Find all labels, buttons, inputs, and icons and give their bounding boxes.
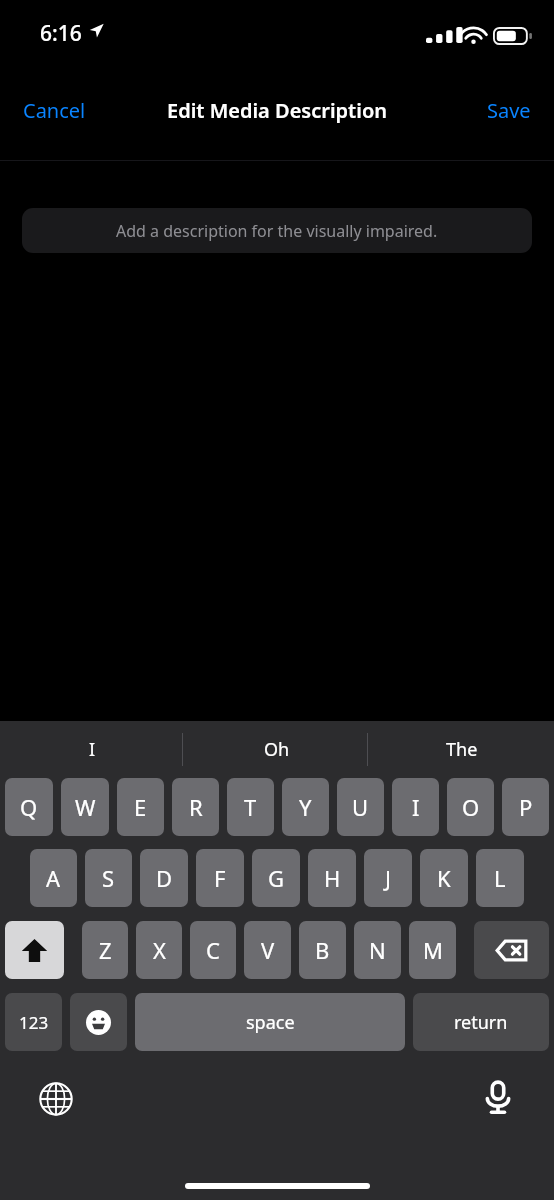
staticText: Oh bbox=[264, 737, 290, 762]
staticText: B bbox=[315, 935, 330, 965]
staticText: M bbox=[423, 935, 443, 965]
staticText: I bbox=[89, 737, 96, 762]
staticText: return bbox=[454, 1010, 508, 1035]
button[interactable]: H bbox=[308, 849, 356, 907]
button[interactable]: Switch keyboard bbox=[33, 1076, 79, 1122]
button[interactable]: A bbox=[30, 849, 77, 907]
staticText: R bbox=[189, 792, 203, 822]
staticText: Z bbox=[99, 935, 112, 965]
staticText: O bbox=[462, 792, 480, 822]
staticText: Edit Media Description bbox=[167, 97, 387, 124]
button[interactable]: I bbox=[392, 778, 439, 836]
staticText: H bbox=[324, 863, 341, 893]
staticText: 123 bbox=[19, 1011, 49, 1034]
button[interactable]: F bbox=[196, 849, 244, 907]
staticText: E bbox=[134, 792, 147, 822]
button[interactable]: X bbox=[136, 921, 182, 979]
button[interactable]: Q bbox=[5, 778, 53, 836]
button[interactable]: G bbox=[252, 849, 300, 907]
button[interactable]: Z bbox=[82, 921, 128, 979]
button[interactable]: Add a description for the visually impai… bbox=[22, 208, 532, 253]
button[interactable]: I bbox=[0, 721, 184, 778]
button[interactable]: N bbox=[354, 921, 401, 979]
staticText: T bbox=[244, 792, 257, 822]
button[interactable]: Dictate bbox=[475, 1074, 521, 1120]
button[interactable]: Shift bbox=[5, 921, 64, 979]
staticText: Y bbox=[299, 792, 312, 822]
button[interactable]: space bbox=[135, 993, 405, 1051]
staticText: The bbox=[446, 737, 478, 762]
staticText: 6:16 bbox=[40, 19, 82, 48]
button[interactable]: 123 bbox=[5, 993, 62, 1051]
staticText: W bbox=[75, 792, 96, 822]
staticText: Save bbox=[487, 97, 531, 124]
staticText: G bbox=[268, 863, 285, 893]
staticText: N bbox=[369, 935, 386, 965]
staticText: A bbox=[46, 863, 61, 893]
button[interactable]: Emoji bbox=[70, 993, 127, 1051]
staticText: F bbox=[214, 863, 226, 893]
button[interactable]: S bbox=[85, 849, 132, 907]
button[interactable]: L bbox=[476, 849, 524, 907]
button[interactable]: P bbox=[502, 778, 549, 836]
button[interactable]: Cancel bbox=[0, 83, 109, 138]
button[interactable]: C bbox=[190, 921, 236, 979]
button[interactable]: W bbox=[61, 778, 109, 836]
button[interactable]: D bbox=[140, 849, 188, 907]
button[interactable]: O bbox=[447, 778, 494, 836]
staticText: V bbox=[261, 935, 275, 965]
staticText: J bbox=[385, 863, 392, 893]
staticText: Q bbox=[20, 792, 38, 822]
staticText: X bbox=[153, 935, 166, 965]
button[interactable]: return bbox=[413, 993, 549, 1051]
staticText: I bbox=[412, 792, 420, 822]
button[interactable]: U bbox=[337, 778, 384, 836]
button[interactable]: E bbox=[117, 778, 164, 836]
button[interactable]: M bbox=[409, 921, 456, 979]
button[interactable]: J bbox=[364, 849, 412, 907]
button[interactable]: B bbox=[299, 921, 346, 979]
staticText: P bbox=[519, 792, 533, 822]
staticText: K bbox=[437, 863, 451, 893]
staticText: L bbox=[494, 863, 506, 893]
staticText: D bbox=[156, 863, 173, 893]
staticText: Add a description for the visually impai… bbox=[116, 220, 438, 242]
staticText: space bbox=[246, 1010, 295, 1035]
button[interactable]: R bbox=[172, 778, 219, 836]
staticText: C bbox=[206, 935, 220, 965]
button[interactable]: Backspace bbox=[474, 921, 549, 979]
button[interactable]: Y bbox=[282, 778, 329, 836]
button[interactable]: Save bbox=[464, 83, 554, 138]
button[interactable]: The bbox=[369, 721, 554, 778]
button[interactable]: T bbox=[227, 778, 274, 836]
staticText: Cancel bbox=[23, 97, 86, 124]
button[interactable]: Oh bbox=[184, 721, 369, 778]
staticText: S bbox=[102, 863, 115, 893]
button[interactable]: V bbox=[244, 921, 291, 979]
staticText: U bbox=[352, 792, 369, 822]
button[interactable]: K bbox=[420, 849, 468, 907]
